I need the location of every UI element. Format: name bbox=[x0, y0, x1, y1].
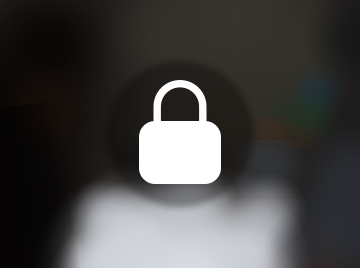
button[interactable]: Unlock bbox=[100, 54, 260, 214]
